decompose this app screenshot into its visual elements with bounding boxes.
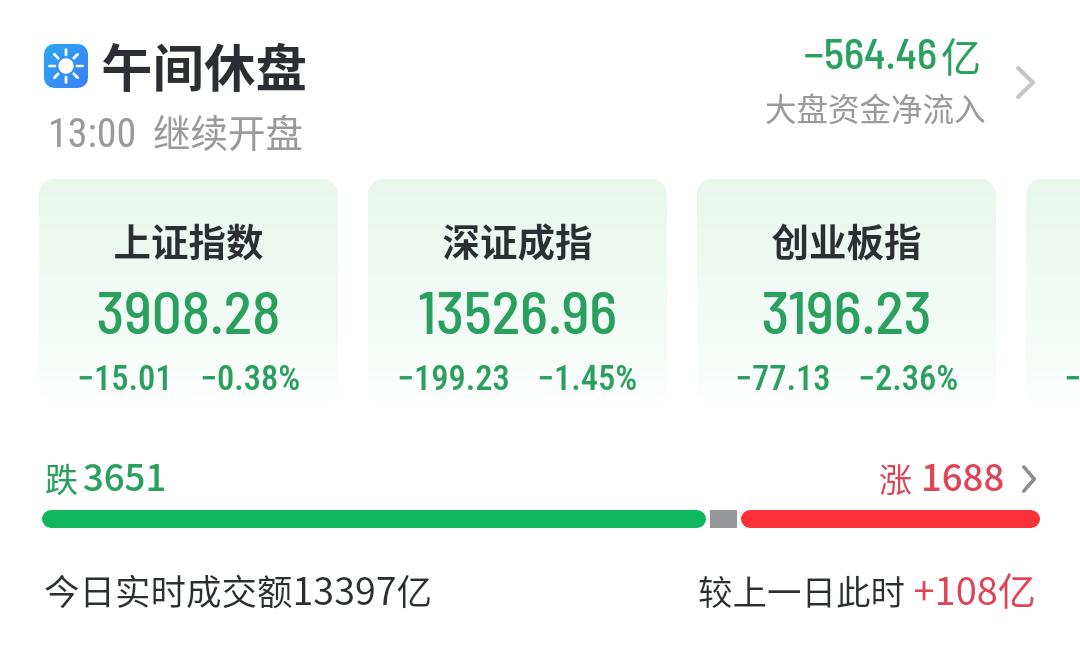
staticText: 3908.28 <box>39 275 338 346</box>
staticText: 13526.96 <box>368 275 667 346</box>
staticText: −15.01 <box>77 358 173 398</box>
staticText: −0.38% <box>200 358 301 398</box>
staticText: −564.46 <box>804 26 938 77</box>
button[interactable]: −564.46 <box>740 20 1044 132</box>
staticText: 3196.23 <box>697 275 996 346</box>
button[interactable]: Market status <box>32 20 362 160</box>
staticText: 深证成指 <box>368 212 667 266</box>
other: More about capital flow <box>1016 66 1035 99</box>
button[interactable]: 北证50 <box>1026 179 1080 407</box>
staticText: 较上一日此时 +108亿 <box>698 561 1036 616</box>
staticText: 3651 <box>83 449 167 502</box>
staticText: 大盘资金净流入 <box>765 84 986 130</box>
staticText: 1688 <box>921 449 1005 502</box>
staticText: −1.45% <box>537 358 638 398</box>
staticText: 跌 <box>45 454 78 502</box>
staticText: 上证指数 <box>39 212 338 266</box>
button[interactable]: 创业板指 <box>697 179 996 407</box>
staticText: 创业板指 <box>697 212 996 266</box>
button[interactable]: 上证指数 <box>39 179 338 407</box>
staticText: 亿 <box>941 26 981 84</box>
other: More about gainers and losers <box>1022 465 1036 493</box>
other: Market status <box>44 44 88 88</box>
staticText: 涨 <box>879 454 912 502</box>
button[interactable]: 深证成指 <box>368 179 667 407</box>
staticText: 今日实时成交额13397亿 <box>44 561 433 615</box>
staticText: −2.36% <box>858 358 959 398</box>
staticText: −22.04 <box>1064 358 1080 398</box>
staticText: 13:00 继续开盘 <box>48 103 304 157</box>
staticText: 午间休盘 <box>101 27 308 102</box>
button[interactable]: 跌 <box>0 450 1080 508</box>
staticText: −77.13 <box>735 358 831 398</box>
staticText: −199.23 <box>397 358 510 398</box>
